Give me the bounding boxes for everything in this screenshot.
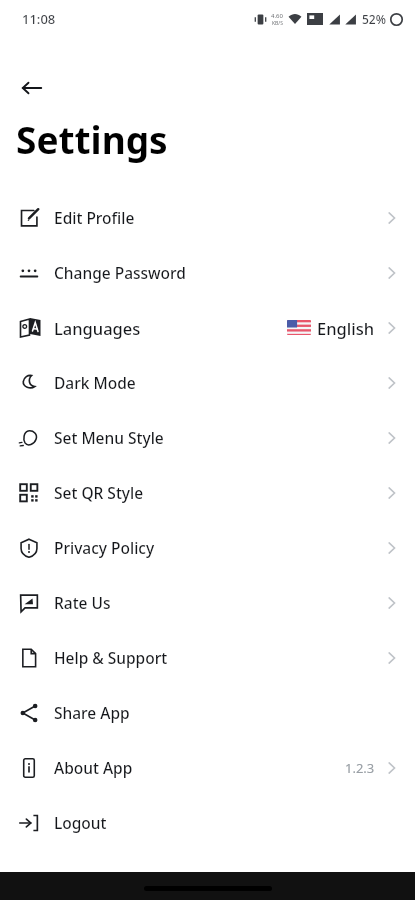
staticText: 52% (362, 11, 386, 27)
staticText: Help & Support (54, 647, 168, 668)
staticText: Settings (16, 114, 168, 164)
staticText: Change Password (54, 262, 186, 283)
button[interactable]: Dark Mode (0, 355, 415, 410)
staticText: 11:08 (22, 10, 56, 28)
button[interactable]: Set Menu Style (0, 410, 415, 465)
staticText: Share App (54, 702, 130, 723)
button[interactable]: Languages (0, 300, 415, 355)
button[interactable]: Change Password (0, 245, 415, 300)
staticText: Languages (54, 317, 141, 339)
button[interactable]: Set QR Style (0, 465, 415, 520)
button[interactable]: About App (0, 740, 415, 795)
staticText: About App (54, 757, 133, 778)
staticText: Rate Us (54, 592, 111, 613)
button[interactable]: Logout (0, 795, 415, 850)
staticText: Edit Profile (54, 207, 135, 228)
staticText: English (317, 317, 375, 339)
button[interactable]: Share App (0, 685, 415, 740)
button[interactable]: Back (10, 66, 54, 110)
button[interactable]: Privacy Policy (0, 520, 415, 575)
staticText: 1.2.3 (345, 759, 375, 777)
staticText: Set QR Style (54, 482, 144, 503)
staticText: Logout (54, 812, 107, 833)
staticText: Dark Mode (54, 372, 136, 393)
button[interactable]: Rate Us (0, 575, 415, 630)
staticText: KB/S (272, 20, 283, 27)
staticText: Privacy Policy (54, 537, 155, 558)
staticText: Set Menu Style (54, 427, 164, 448)
button[interactable]: Edit Profile (0, 190, 415, 245)
staticText: 4.60 (271, 12, 283, 20)
button[interactable]: Help & Support (0, 630, 415, 685)
